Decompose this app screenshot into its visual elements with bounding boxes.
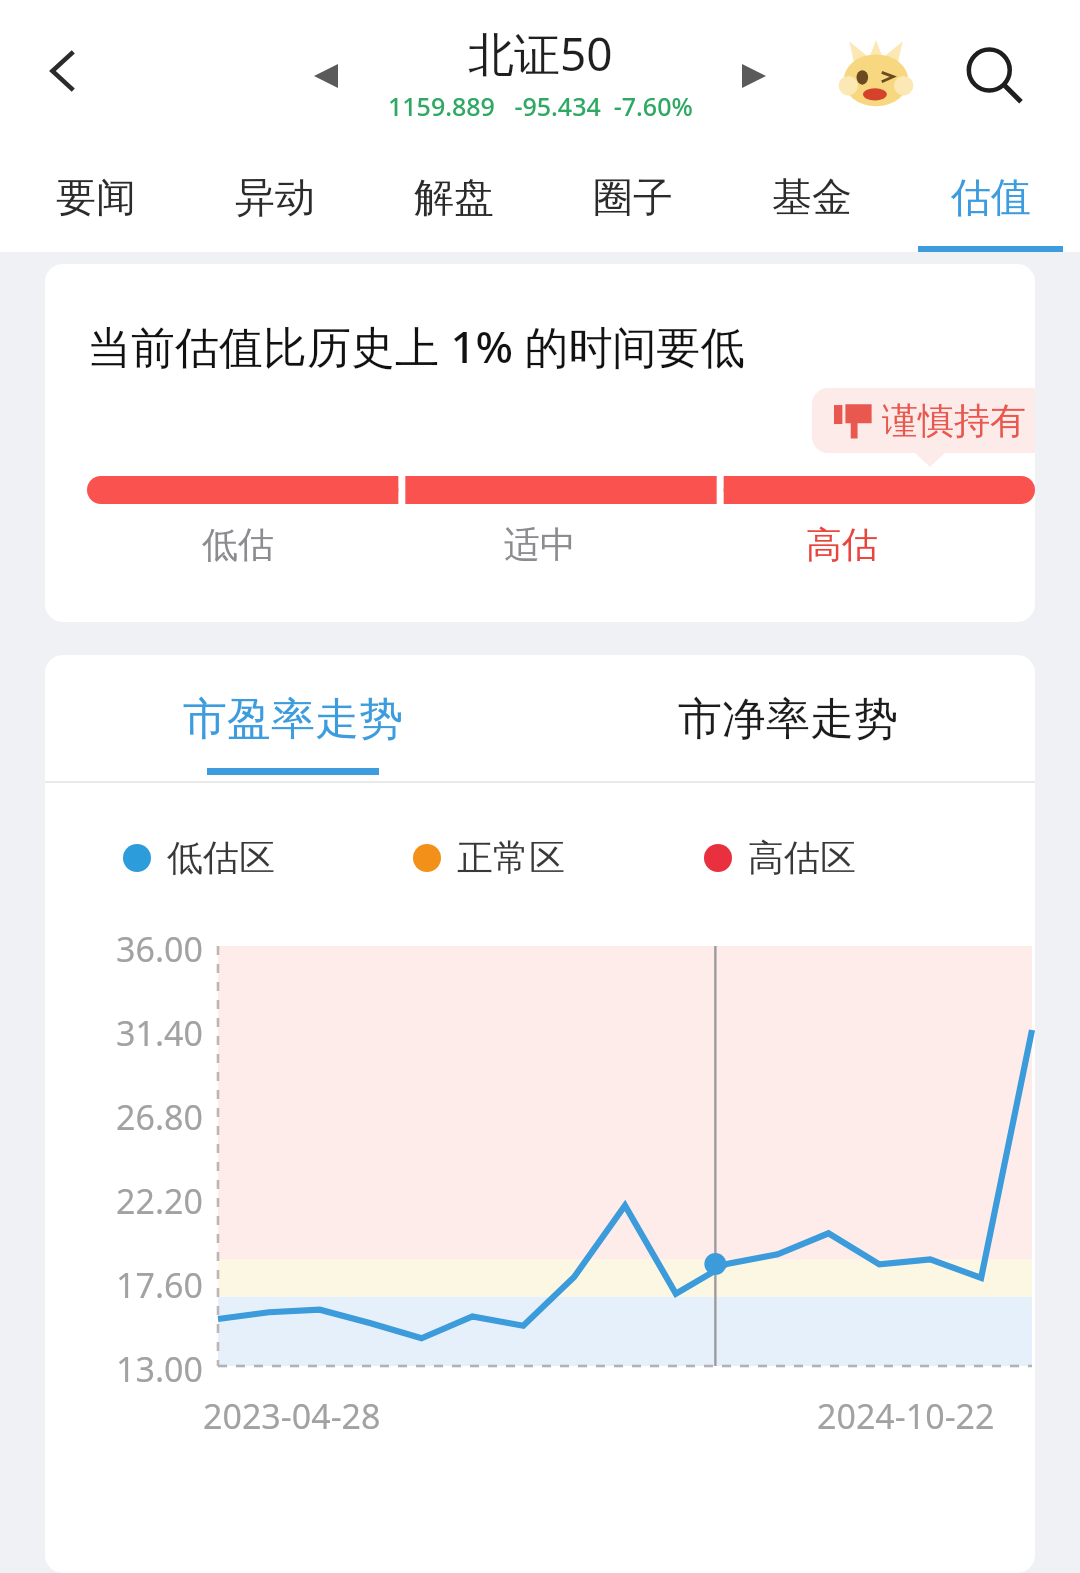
button[interactable]: 当前估值比历史上 1% 的时间要低 — [45, 264, 1035, 622]
staticText: 1159.889 -95.434 -7.60% — [388, 89, 693, 123]
staticText: 31.40 — [45, 1010, 203, 1056]
staticText: 北证50 — [468, 22, 613, 85]
staticText: 17.60 — [45, 1262, 203, 1308]
staticText: 低估 — [87, 522, 389, 567]
staticText: 36.00 — [45, 926, 203, 972]
button[interactable]: Previous stock — [298, 48, 354, 104]
staticText: 22.20 — [45, 1178, 203, 1224]
button[interactable]: 圈子 — [543, 142, 722, 252]
button[interactable]: 解盘 — [364, 142, 543, 252]
button[interactable]: Back — [18, 25, 110, 117]
button[interactable]: Next stock — [726, 48, 782, 104]
staticText: 适中 — [389, 522, 691, 567]
button[interactable]: 基金 — [722, 142, 901, 252]
button[interactable]: Mascot — [832, 32, 920, 120]
staticText: 高估区 — [748, 835, 856, 880]
staticText: 异动 — [235, 172, 315, 222]
staticText: 谨慎持有 — [882, 398, 1026, 443]
staticText: 解盘 — [414, 172, 494, 222]
button[interactable]: 异动 — [185, 142, 364, 252]
staticText: 要闻 — [56, 172, 136, 222]
staticText: 正常区 — [457, 835, 565, 880]
staticText: 低估区 — [167, 835, 275, 880]
staticText: 市盈率走势 — [183, 692, 403, 747]
button[interactable]: 市净率走势 — [540, 655, 1035, 783]
button[interactable]: 要闻 — [6, 142, 185, 252]
button[interactable]: 估值 — [901, 142, 1080, 252]
staticText: 市净率走势 — [678, 692, 898, 747]
staticText: 高估 — [691, 522, 993, 567]
staticText: 圈子 — [593, 172, 673, 222]
staticText: 13.00 — [45, 1346, 203, 1392]
staticText: 26.80 — [45, 1094, 203, 1140]
staticText: 2023-04-28 — [203, 1393, 381, 1439]
button[interactable]: 市盈率走势 — [45, 655, 540, 783]
staticText: 基金 — [772, 172, 852, 222]
staticText: 估值 — [951, 172, 1031, 222]
staticText: 2024-10-22 — [817, 1393, 995, 1439]
staticText: 当前估值比历史上 1% 的时间要低 — [87, 316, 745, 376]
button[interactable]: Search — [950, 32, 1036, 118]
